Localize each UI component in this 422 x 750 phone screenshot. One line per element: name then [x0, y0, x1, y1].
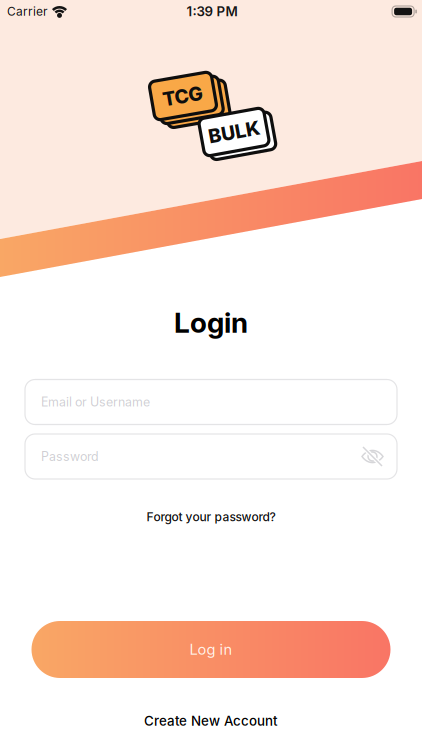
staticText: 1:39 PM	[186, 3, 237, 19]
staticText: Email or Username	[41, 394, 150, 409]
staticText: BULK	[208, 120, 260, 144]
staticText: Carrier	[7, 4, 48, 19]
button[interactable]: Forgot your password?	[131, 505, 291, 529]
staticText: Create New Account	[144, 713, 278, 729]
staticText: Login	[174, 306, 248, 339]
button[interactable]: Create New Account	[111, 708, 311, 734]
staticText: Forgot your password?	[146, 510, 275, 524]
button[interactable]: Log in	[31, 621, 390, 678]
staticText: Log in	[189, 641, 232, 658]
staticText: Password	[41, 449, 99, 464]
staticText: TCG	[162, 84, 203, 108]
